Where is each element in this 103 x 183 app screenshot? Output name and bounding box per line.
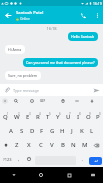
button[interactable]: Attach file xyxy=(0,84,13,96)
button[interactable]: Backspace xyxy=(90,138,103,152)
button[interactable]: N xyxy=(68,138,79,152)
staticText: Online xyxy=(20,17,30,21)
staticText: C xyxy=(39,141,43,149)
staticText: 6 xyxy=(59,112,61,116)
staticText: R xyxy=(36,113,40,121)
staticText: Type message xyxy=(13,88,90,93)
staticText: U xyxy=(66,113,71,121)
button[interactable]: Z xyxy=(11,138,23,152)
staticText: P xyxy=(96,113,100,121)
staticText: O xyxy=(86,113,91,121)
button[interactable]: Enter xyxy=(89,157,102,165)
button[interactable]: , xyxy=(14,152,24,166)
button[interactable]: L xyxy=(87,124,97,138)
button[interactable]: . xyxy=(77,152,88,166)
staticText: Sure, no problem xyxy=(8,73,38,78)
button[interactable]: 1 xyxy=(0,110,11,124)
button[interactable]: Call xyxy=(75,7,91,23)
staticText: H xyxy=(60,127,65,135)
staticText: 4 xyxy=(39,112,41,116)
button[interactable]: 3 xyxy=(22,110,33,124)
staticText: L xyxy=(90,127,94,135)
staticText: N xyxy=(71,141,76,149)
staticText: W xyxy=(14,113,20,121)
button[interactable]: Send xyxy=(90,84,103,96)
staticText: 3 xyxy=(29,112,31,116)
staticText: 8 xyxy=(79,112,81,116)
button[interactable]: Settings xyxy=(72,96,82,106)
staticText: M xyxy=(82,141,88,149)
button[interactable]: Hi Anna xyxy=(5,45,25,54)
staticText: V xyxy=(50,141,54,149)
button[interactable]: Switch keyboard xyxy=(83,167,103,183)
staticText: 7 xyxy=(69,112,71,116)
button[interactable]: 0 xyxy=(93,110,103,124)
button[interactable]: Sure, no problem xyxy=(5,71,41,80)
staticText: F xyxy=(40,127,44,135)
staticText: Z xyxy=(15,141,19,149)
button[interactable]: GIF xyxy=(38,96,48,106)
staticText: K xyxy=(80,127,84,135)
button[interactable]: Recent apps xyxy=(55,167,83,183)
staticText: S xyxy=(20,127,24,135)
staticText: I xyxy=(77,113,80,121)
button[interactable]: Hide keyboard xyxy=(0,167,27,183)
staticText: GIF xyxy=(40,99,46,103)
button[interactable]: J xyxy=(67,124,77,138)
button[interactable]: F xyxy=(37,124,47,138)
staticText: B xyxy=(61,141,65,149)
button[interactable]: C xyxy=(35,138,46,152)
button[interactable]: Collapse xyxy=(0,96,10,106)
button[interactable]: Hello Santosh xyxy=(68,32,98,41)
staticText: X xyxy=(27,141,31,149)
staticText: D xyxy=(30,127,35,135)
button[interactable]: 2 xyxy=(11,110,22,124)
button[interactable]: 9 xyxy=(83,110,93,124)
staticText: . xyxy=(82,156,84,162)
staticText: 16:18 xyxy=(0,26,103,31)
staticText: Hello Santosh xyxy=(71,34,95,39)
staticText: 16:19 xyxy=(93,1,102,6)
button[interactable]: H xyxy=(57,124,67,138)
button[interactable]: S xyxy=(16,124,27,138)
staticText: 9 xyxy=(89,112,91,116)
button[interactable]: 5 xyxy=(43,110,53,124)
staticText: 5 xyxy=(49,112,51,116)
button[interactable]: Search xyxy=(11,96,21,106)
button[interactable]: B xyxy=(57,138,68,152)
button[interactable]: 6 xyxy=(53,110,63,124)
button[interactable]: 4 xyxy=(33,110,43,124)
staticText: Q xyxy=(3,113,8,121)
staticText: Hi Anna xyxy=(8,47,22,52)
button[interactable]: X xyxy=(23,138,35,152)
button[interactable]: V xyxy=(46,138,57,152)
button[interactable]: K xyxy=(77,124,87,138)
button[interactable]: 7 xyxy=(63,110,73,124)
staticText: Santosh Patel xyxy=(16,10,44,16)
staticText: 2 xyxy=(18,112,20,116)
button[interactable]: Back xyxy=(0,7,16,23)
button[interactable]: Home xyxy=(27,167,55,183)
staticText: G xyxy=(50,127,55,135)
staticText: 0 xyxy=(99,112,101,116)
staticText: Can you send me that document please? xyxy=(26,60,95,65)
button[interactable]: Clipboard xyxy=(58,96,68,106)
button[interactable]: Voice input xyxy=(87,96,97,106)
button[interactable]: M xyxy=(79,138,90,152)
button[interactable]: A xyxy=(5,124,16,138)
staticText: J xyxy=(71,127,73,135)
button[interactable]: 8 xyxy=(73,110,83,124)
button[interactable]: Shift xyxy=(0,138,11,152)
staticText: , xyxy=(18,156,20,162)
staticText: ?123 xyxy=(3,157,12,162)
button[interactable]: G xyxy=(47,124,57,138)
button[interactable]: More options xyxy=(91,7,103,23)
button[interactable]: Emoji xyxy=(24,152,34,166)
staticText: A xyxy=(9,127,13,135)
button[interactable]: D xyxy=(27,124,37,138)
staticText: 1 xyxy=(7,112,9,116)
button[interactable]: ?123 xyxy=(0,152,14,166)
button[interactable]: Stickers xyxy=(27,96,37,106)
button[interactable]: Can you send me that document please? xyxy=(23,58,98,67)
